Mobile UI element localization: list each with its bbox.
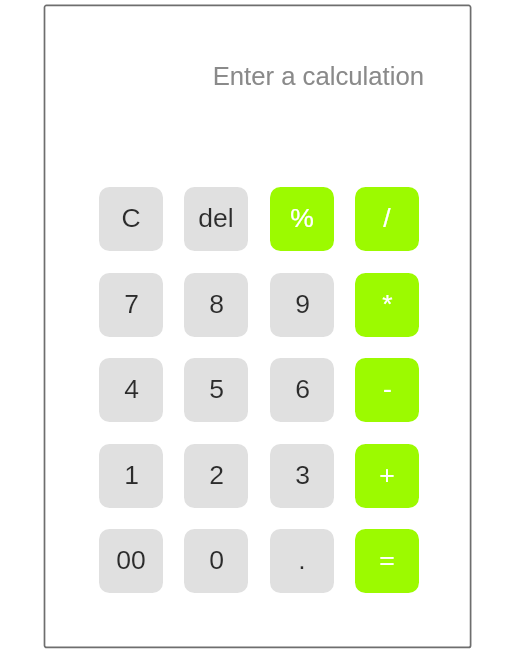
button[interactable]: 8 [184,273,248,337]
button[interactable]: = [355,529,419,593]
button[interactable]: * [355,273,419,337]
staticText: Enter a calculation [212,62,424,91]
button[interactable]: del [184,187,248,251]
button[interactable]: 9 [270,273,334,337]
staticText: + [379,460,395,490]
button[interactable]: . [270,529,334,593]
button[interactable]: 1 [99,444,163,508]
staticText: 00 [116,545,146,575]
staticText: - [383,374,392,404]
button[interactable]: 4 [99,358,163,422]
staticText: 9 [295,289,310,319]
button[interactable]: 3 [270,444,334,508]
staticText: C [121,203,141,233]
staticText: 8 [209,289,224,319]
button[interactable]: 5 [184,358,248,422]
button[interactable]: - [355,358,419,422]
staticText: 1 [124,460,139,490]
staticText: 2 [209,460,224,490]
staticText: 4 [124,374,139,404]
button[interactable]: 7 [99,273,163,337]
staticText: % [290,203,314,233]
button[interactable]: + [355,444,419,508]
button[interactable]: 2 [184,444,248,508]
staticText: / [383,203,391,233]
staticText: 3 [295,460,310,490]
button[interactable]: / [355,187,419,251]
staticText: 6 [295,374,310,404]
staticText: 0 [209,545,224,575]
staticText: 7 [124,289,139,319]
staticText: 5 [209,374,224,404]
staticText: . [298,545,306,575]
button[interactable]: % [270,187,334,251]
button[interactable]: 6 [270,358,334,422]
staticText: = [379,545,395,575]
staticText: * [382,289,393,319]
button[interactable]: 00 [99,529,163,593]
button[interactable]: C [99,187,163,251]
button[interactable]: 0 [184,529,248,593]
staticText: del [198,203,234,233]
